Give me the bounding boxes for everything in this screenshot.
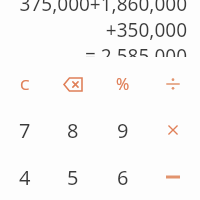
button[interactable]: 375,000+1,860,000: [0, 0, 200, 66]
button[interactable]: 6: [101, 155, 145, 199]
button[interactable]: 8: [51, 108, 95, 152]
button[interactable]: Clear: [3, 62, 47, 106]
staticText: 9: [117, 117, 129, 144]
staticText: +350,000: [105, 17, 187, 43]
button[interactable]: Percent: [101, 62, 145, 106]
staticText: 7: [19, 117, 31, 144]
button[interactable]: Subtract: [151, 155, 195, 199]
staticText: %: [116, 73, 130, 95]
button[interactable]: 9: [101, 108, 145, 152]
staticText: = 2,585,000: [84, 43, 187, 57]
staticText: 5: [67, 164, 79, 191]
staticText: 375,000+1,860,000: [19, 0, 187, 17]
button[interactable]: 7: [3, 108, 47, 152]
button[interactable]: Multiply: [151, 108, 195, 152]
button[interactable]: Divide: [151, 62, 195, 106]
button[interactable]: 5: [51, 155, 95, 199]
staticText: C: [20, 74, 30, 94]
button[interactable]: 4: [3, 155, 47, 199]
staticText: 6: [117, 164, 129, 191]
button[interactable]: Backspace: [51, 62, 95, 106]
staticText: 4: [19, 164, 31, 191]
staticText: 8: [67, 117, 79, 144]
